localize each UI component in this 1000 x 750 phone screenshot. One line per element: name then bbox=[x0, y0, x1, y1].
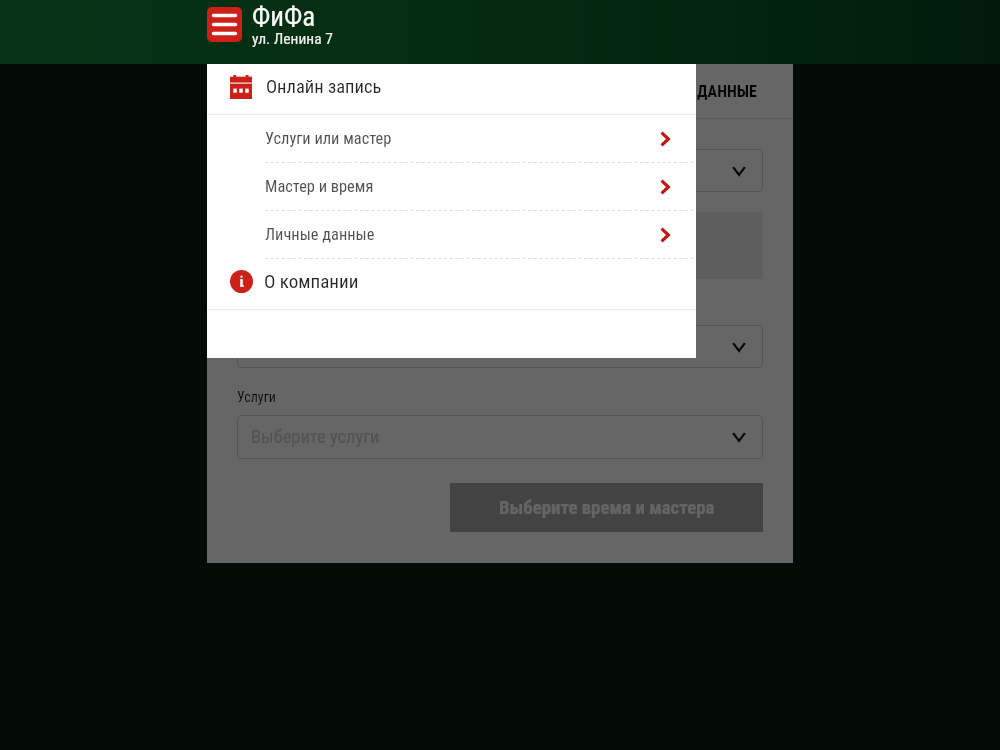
staticText: Онлайн запись bbox=[266, 76, 382, 98]
staticText: Мастер и время bbox=[265, 177, 374, 196]
button[interactable]: О компании bbox=[207, 259, 696, 309]
button[interactable]: Мастер и время bbox=[207, 163, 696, 210]
button[interactable]: Выберите услуги bbox=[237, 415, 763, 459]
button[interactable] bbox=[0, 0, 1000, 750]
button[interactable]: Выберите время и мастера bbox=[450, 483, 763, 532]
staticText: ул. Ленина 7 bbox=[252, 30, 333, 47]
staticText: Выберите услуги bbox=[251, 426, 380, 448]
staticText: ФиФа bbox=[252, 1, 316, 33]
staticText: Выберите время и мастера bbox=[499, 497, 715, 519]
staticText: Личные данные bbox=[265, 225, 375, 244]
staticText: О компании bbox=[264, 270, 359, 292]
button[interactable]: Услуги или мастер bbox=[207, 115, 696, 162]
button[interactable] bbox=[237, 149, 763, 192]
button[interactable]: Open navigation menu bbox=[207, 7, 242, 42]
staticText: ДАННЫЕ bbox=[697, 82, 757, 101]
staticText: Услуги bbox=[237, 389, 276, 405]
button[interactable]: Онлайн запись bbox=[207, 64, 696, 114]
button[interactable]: Личные данные bbox=[207, 211, 696, 258]
button[interactable] bbox=[237, 325, 763, 368]
staticText: Услуги или мастер bbox=[265, 129, 392, 148]
button[interactable]: ДАННЫЕ bbox=[207, 64, 793, 118]
